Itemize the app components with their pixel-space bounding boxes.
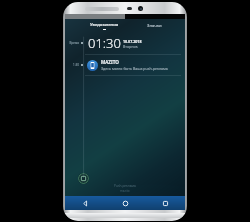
staticText: Уведомления — [90, 22, 119, 28]
staticText: MAZITO — [101, 59, 119, 65]
staticText: Значки — [147, 23, 162, 29]
staticText: Время — [69, 41, 79, 45]
staticText: 1:30 — [73, 63, 79, 67]
staticText: 10.07.2018 — [123, 39, 142, 44]
button[interactable]: Recents — [145, 196, 185, 210]
staticText: Здесь могло быть Ваша push-реклама — [101, 66, 168, 71]
button[interactable]: Время — [65, 32, 185, 54]
staticText: 01:30 — [88, 34, 121, 52]
button[interactable]: Clear notifications — [78, 173, 89, 184]
button[interactable]: 1:30 — [65, 55, 185, 75]
staticText: mazito — [120, 189, 130, 193]
button[interactable]: Home — [105, 196, 145, 210]
button[interactable]: Уведомления — [80, 19, 129, 32]
other: MAZITO app icon — [87, 60, 98, 71]
button[interactable]: Значки — [129, 19, 179, 32]
button[interactable]: Back — [65, 196, 105, 210]
staticText: Вторник — [123, 44, 138, 49]
staticText: Push-реклама — [114, 184, 136, 188]
